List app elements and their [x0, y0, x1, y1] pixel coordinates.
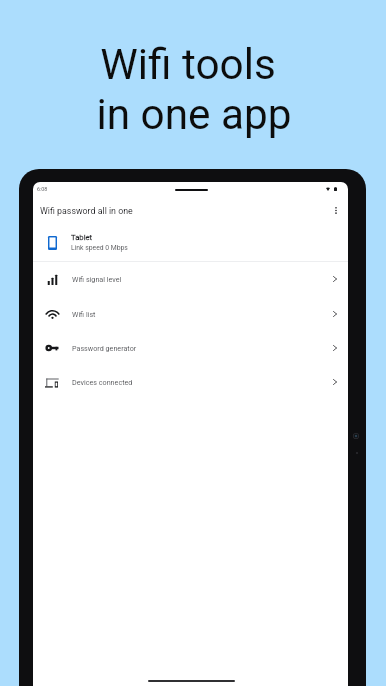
staticText: Password generator: [72, 344, 137, 352]
staticText: Tablet: [71, 233, 93, 242]
staticText: Wifi tools: [100, 40, 276, 90]
staticText: Link speed 0 Mbps: [71, 244, 128, 252]
button[interactable]: Tablet: [33, 222, 348, 263]
staticText: Wifi signal level: [72, 275, 122, 283]
staticText: 6:08: [37, 186, 48, 192]
button[interactable]: Wifi signal level: [33, 263, 348, 297]
button[interactable]: Wifi list: [33, 298, 348, 332]
button[interactable]: Devices connected: [33, 366, 348, 400]
staticText: Devices connected: [72, 378, 133, 386]
staticText: in one app: [96, 90, 292, 140]
staticText: Wifi password all in one: [40, 206, 133, 216]
button[interactable]: More options: [326, 200, 345, 219]
button[interactable]: Password generator: [33, 332, 348, 366]
staticText: Wifi list: [72, 310, 96, 318]
